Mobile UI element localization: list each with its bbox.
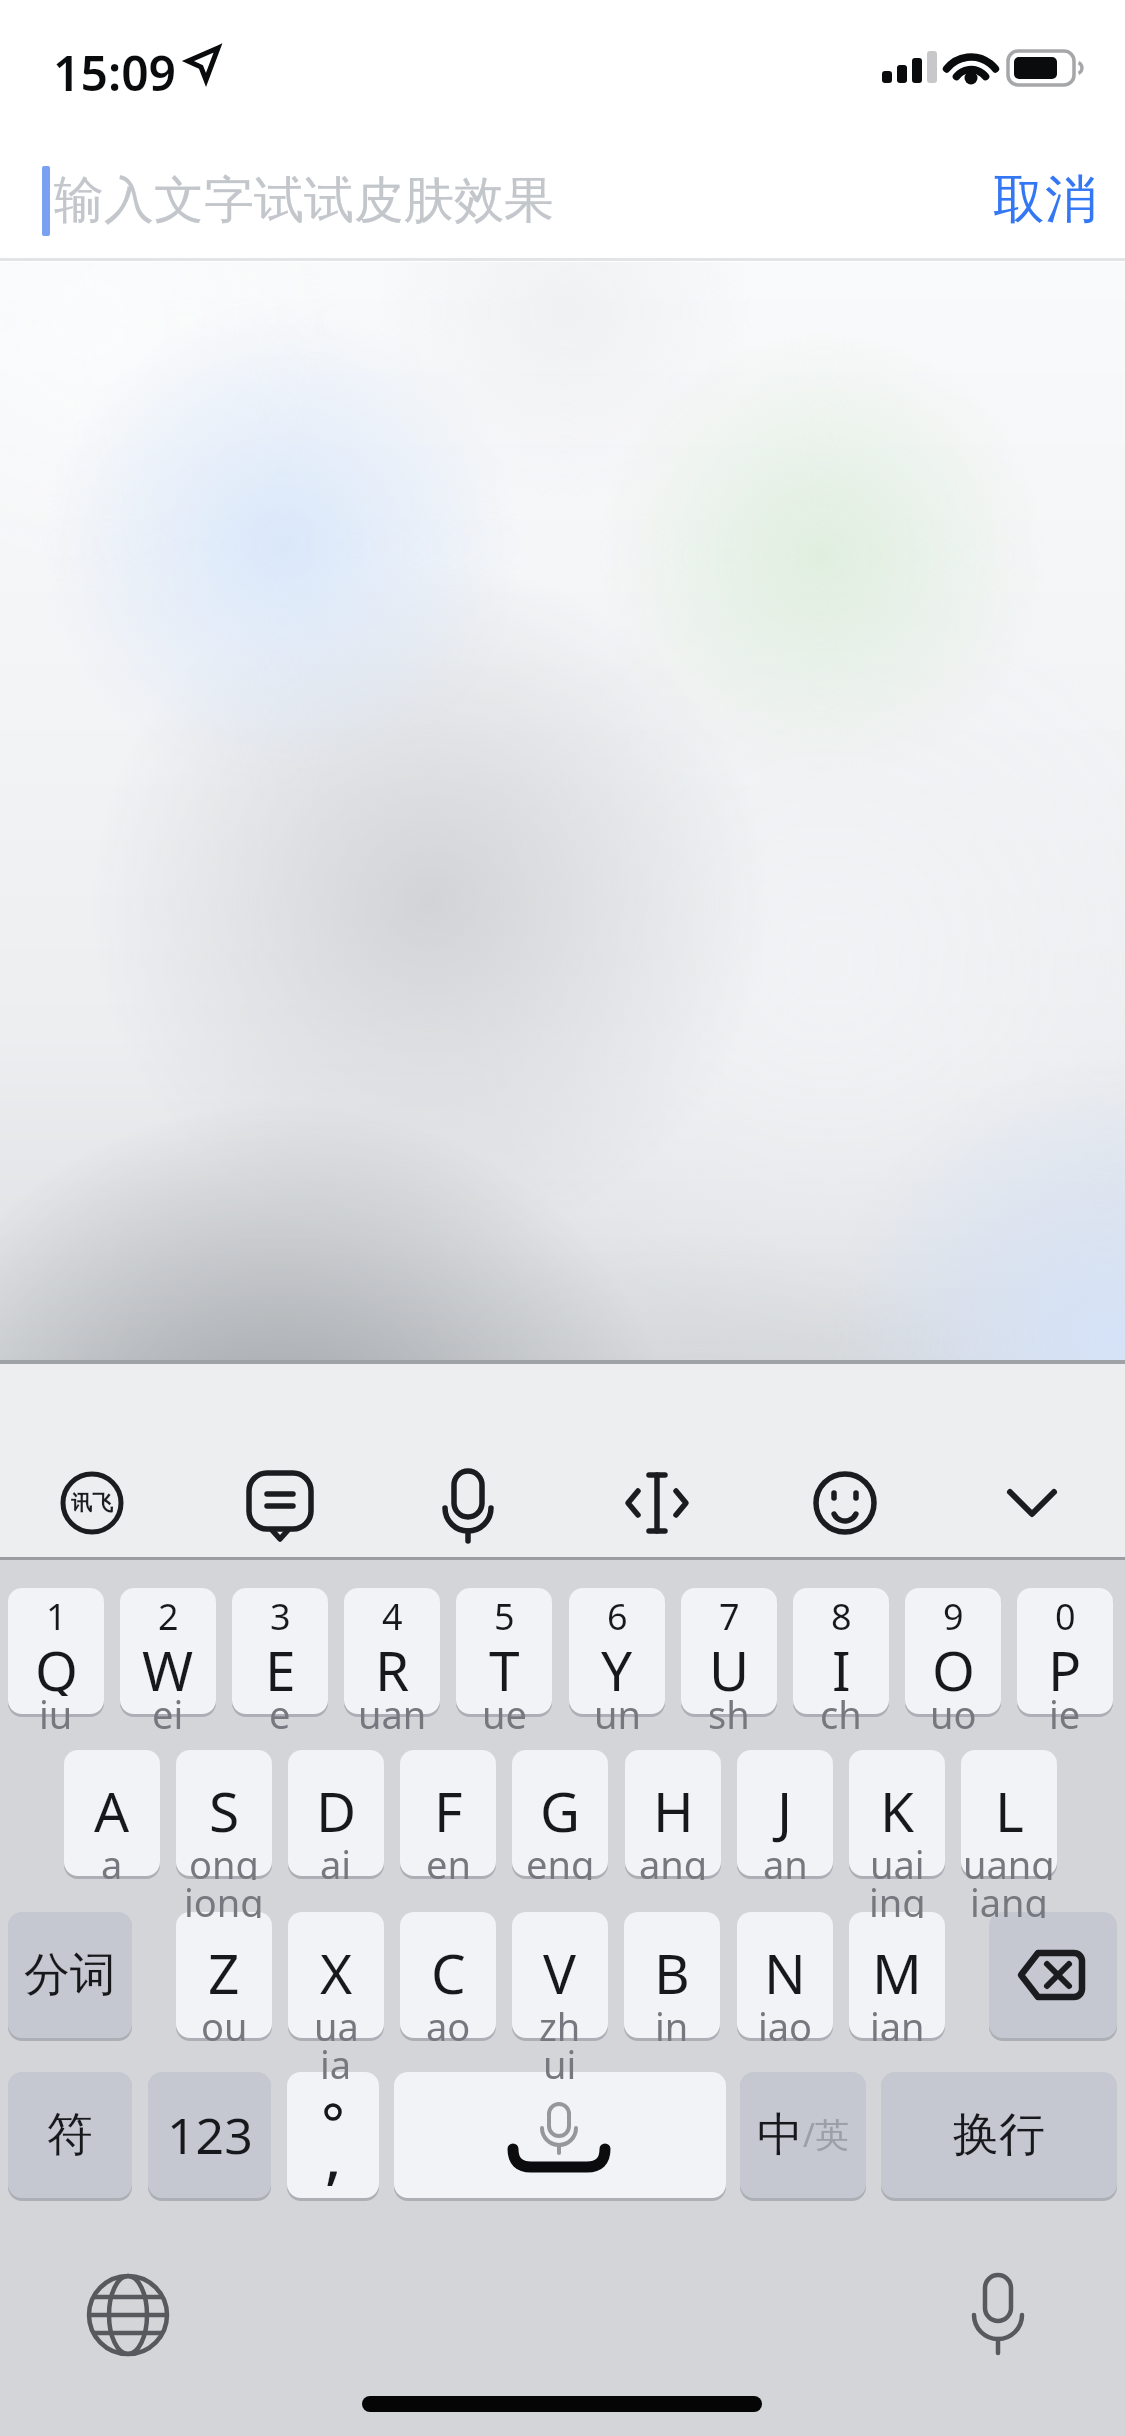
staticText: G <box>540 1773 581 1848</box>
staticText: M <box>872 1935 922 2010</box>
staticText: ch <box>820 1688 862 1730</box>
button[interactable] <box>785 1443 905 1563</box>
staticText: R <box>375 1632 410 1696</box>
staticText: uang <box>963 1838 1055 1880</box>
button[interactable] <box>849 1912 945 2038</box>
staticText: uan <box>358 1688 427 1730</box>
staticText: sh <box>708 1688 750 1730</box>
staticText: 输入文字试试皮肤效果 <box>54 169 554 232</box>
button[interactable] <box>456 1588 552 1714</box>
staticText: in <box>655 2000 689 2042</box>
button[interactable]: 输入文字试试皮肤效果 <box>54 150 754 250</box>
button[interactable] <box>148 2072 271 2198</box>
button[interactable] <box>287 2072 379 2198</box>
button[interactable] <box>8 2072 132 2198</box>
staticText: 英 <box>815 2114 849 2157</box>
staticText: X <box>320 1935 353 2010</box>
button[interactable] <box>288 1912 384 2038</box>
staticText: 0 <box>1055 1592 1076 1630</box>
button[interactable] <box>288 1750 384 1876</box>
button[interactable] <box>400 1750 496 1876</box>
staticText: B <box>654 1935 690 2010</box>
staticText: D <box>316 1773 357 1848</box>
button[interactable] <box>394 2072 726 2198</box>
staticText: 中 <box>757 2106 803 2164</box>
staticText: ing <box>869 1876 926 1918</box>
staticText: J <box>777 1773 793 1848</box>
button[interactable] <box>344 1588 440 1714</box>
staticText: C <box>431 1935 466 2010</box>
staticText: Z <box>208 1935 240 2010</box>
staticText: Y <box>601 1632 633 1696</box>
button[interactable] <box>64 1750 160 1876</box>
button[interactable] <box>78 2265 178 2365</box>
button[interactable] <box>905 1588 1001 1714</box>
button[interactable] <box>597 1443 717 1563</box>
button[interactable] <box>989 1912 1117 2038</box>
button[interactable] <box>176 1750 272 1876</box>
button[interactable] <box>972 1443 1092 1563</box>
staticText: 7 <box>719 1592 740 1630</box>
staticText: A <box>94 1773 130 1848</box>
staticText: 15:09 <box>53 40 177 92</box>
staticText: E <box>265 1632 296 1696</box>
button[interactable]: 取消 <box>980 150 1110 250</box>
staticText: I <box>832 1632 851 1696</box>
staticText: en <box>426 1838 471 1880</box>
button[interactable] <box>793 1588 889 1714</box>
staticText: 讯飞 <box>71 1490 113 1516</box>
staticText: eng <box>526 1838 595 1880</box>
staticText: V <box>543 1935 577 2010</box>
staticText: ui <box>543 2038 577 2080</box>
staticText: ei <box>152 1688 184 1730</box>
staticText: H <box>653 1773 694 1848</box>
button[interactable] <box>512 1750 608 1876</box>
button[interactable] <box>740 2072 866 2198</box>
staticText: un <box>594 1688 641 1730</box>
button[interactable] <box>220 1443 340 1563</box>
staticText: an <box>763 1838 808 1880</box>
button[interactable] <box>625 1750 721 1876</box>
staticText: ie <box>1049 1688 1081 1730</box>
button[interactable] <box>849 1750 945 1876</box>
button[interactable] <box>1017 1588 1113 1714</box>
staticText: / <box>803 2113 815 2157</box>
staticText: K <box>880 1773 915 1848</box>
staticText: ang <box>639 1838 708 1880</box>
staticText: ue <box>482 1688 527 1730</box>
staticText: U <box>709 1632 750 1696</box>
button[interactable] <box>961 1750 1057 1876</box>
button[interactable] <box>408 1443 528 1563</box>
staticText: a <box>101 1838 123 1880</box>
button[interactable]: 讯飞 <box>32 1443 152 1563</box>
staticText: iao <box>758 2000 813 2042</box>
button[interactable] <box>176 1912 272 2038</box>
button[interactable] <box>232 1588 328 1714</box>
button[interactable] <box>948 2265 1048 2365</box>
staticText: N <box>764 1935 806 2010</box>
staticText: Q <box>35 1632 78 1696</box>
staticText: e <box>269 1688 291 1730</box>
staticText: 3 <box>270 1592 291 1630</box>
staticText: ao <box>426 2000 471 2042</box>
button[interactable] <box>120 1588 216 1714</box>
button[interactable] <box>400 1912 496 2038</box>
staticText: 9 <box>943 1592 964 1630</box>
button[interactable] <box>737 1750 833 1876</box>
staticText: 5 <box>494 1592 515 1630</box>
button[interactable] <box>624 1912 720 2038</box>
staticText: 1 <box>46 1592 67 1630</box>
staticText: ong <box>189 1838 259 1880</box>
button[interactable] <box>881 2072 1117 2198</box>
staticText: , <box>324 2106 343 2186</box>
staticText: P <box>1048 1632 1082 1696</box>
button[interactable] <box>737 1912 833 2038</box>
button[interactable] <box>8 1912 132 2038</box>
staticText: T <box>489 1632 520 1696</box>
staticText: uo <box>930 1688 977 1730</box>
button[interactable] <box>512 1912 608 2038</box>
button[interactable] <box>8 1588 104 1714</box>
button[interactable] <box>681 1588 777 1714</box>
button[interactable] <box>569 1588 665 1714</box>
staticText: ai <box>320 1838 352 1880</box>
